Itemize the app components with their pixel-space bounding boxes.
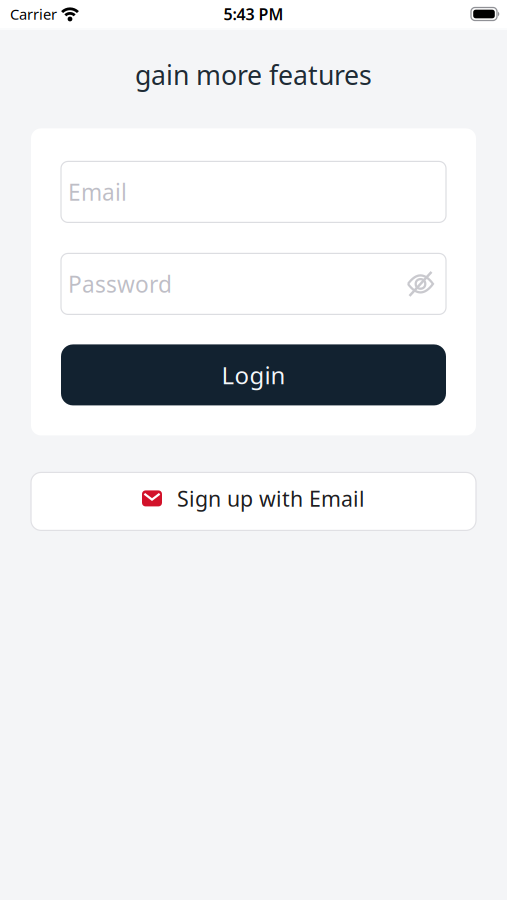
staticText: gain more features — [135, 57, 372, 92]
staticText: 5:43 PM — [223, 3, 283, 25]
staticText: Email — [68, 177, 127, 207]
button[interactable]: Sign up with Email — [31, 472, 476, 530]
button[interactable]: Login — [61, 344, 446, 405]
button[interactable]: Email — [61, 161, 446, 222]
staticText: Carrier — [10, 4, 57, 24]
button[interactable]: Password — [61, 253, 446, 314]
staticText: Login — [221, 359, 285, 391]
staticText: Password — [68, 269, 172, 299]
staticText: Sign up with Email — [177, 484, 365, 512]
